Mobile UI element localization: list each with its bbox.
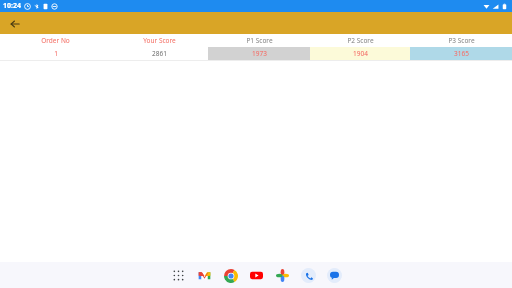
- button[interactable]: Google Photos: [274, 267, 291, 284]
- button[interactable]: Back: [6, 15, 23, 32]
- staticText: P2 Score: [347, 36, 374, 45]
- staticText: 1: [54, 49, 58, 58]
- button[interactable]: YouTube: [248, 267, 265, 284]
- button[interactable]: All apps: [170, 267, 187, 284]
- staticText: Your Score: [143, 36, 176, 45]
- staticText: P3 Score: [448, 36, 475, 45]
- button[interactable]: Chrome: [222, 267, 239, 284]
- button[interactable]: Messages: [326, 267, 343, 284]
- staticText: 1904: [353, 49, 368, 58]
- staticText: 10:24: [3, 1, 21, 11]
- staticText: 2861: [152, 49, 167, 58]
- staticText: 1973: [252, 49, 267, 58]
- button[interactable]: 1: [0, 47, 512, 60]
- staticText: P1 Score: [246, 36, 273, 45]
- button[interactable]: Phone: [300, 267, 317, 284]
- button[interactable]: Gmail: [196, 267, 213, 284]
- staticText: Order No: [41, 36, 70, 45]
- staticText: 3165: [454, 49, 469, 58]
